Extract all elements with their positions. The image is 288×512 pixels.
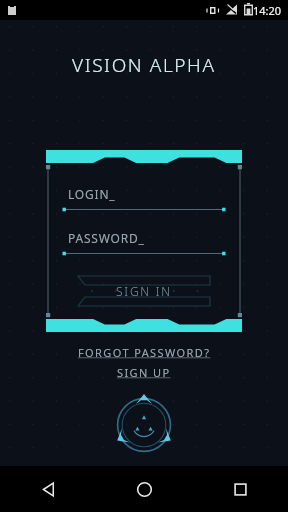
- button[interactable]: [0, 207, 288, 213]
- staticText: SIGN IN: [116, 283, 172, 299]
- button[interactable]: Recents: [192, 466, 288, 512]
- staticText: 14:20: [253, 3, 282, 18]
- button[interactable]: Home: [96, 466, 192, 512]
- staticText: LOGIN_: [68, 186, 116, 202]
- button[interactable]: [0, 251, 288, 257]
- button[interactable]: FORGOT PASSWORD?: [74, 344, 215, 361]
- button[interactable]: SIGN UP: [113, 364, 175, 381]
- staticText: VISION ALPHA: [72, 52, 216, 78]
- button[interactable]: SIGN IN: [78, 276, 210, 306]
- staticText: PASSWORD_: [68, 230, 145, 246]
- button[interactable]: Back: [0, 466, 96, 512]
